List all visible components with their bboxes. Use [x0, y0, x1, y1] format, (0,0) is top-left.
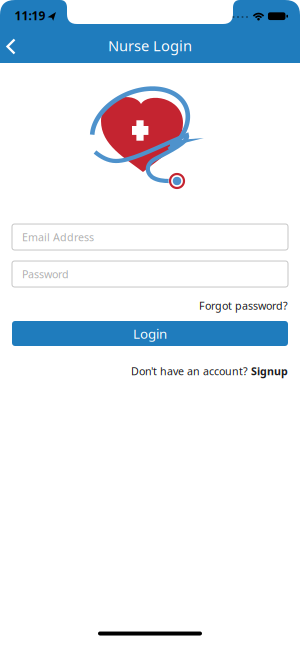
- staticText: Signup: [251, 364, 288, 378]
- staticText: Login: [133, 325, 167, 342]
- button[interactable]: Signup: [251, 364, 288, 378]
- staticText: Password: [22, 267, 69, 281]
- staticText: Email Address: [22, 230, 94, 244]
- button[interactable]: Back: [0, 31, 26, 61]
- staticText: Nurse Login: [108, 36, 192, 55]
- staticText: Forgot password?: [199, 298, 288, 313]
- button[interactable]: Login: [12, 321, 288, 346]
- button[interactable]: Forgot password?: [12, 298, 288, 313]
- staticText: Don't have an account?: [131, 364, 251, 378]
- staticText: 11:19: [14, 7, 45, 23]
